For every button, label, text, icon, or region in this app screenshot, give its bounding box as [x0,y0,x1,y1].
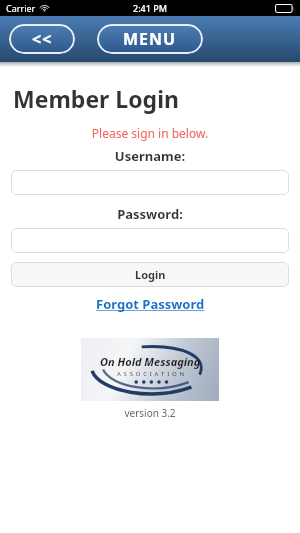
staticText: << [32,28,53,50]
staticText: On Hold Messaging [100,354,201,369]
button[interactable]: Login [11,262,289,287]
staticText: Forgot Password [96,295,205,313]
staticText: version 3.2 [0,406,300,420]
button[interactable] [11,170,289,195]
button[interactable]: MENU [97,24,203,54]
button[interactable]: Forgot Password [96,295,205,313]
staticText: Member Login [13,83,179,114]
staticText: Carrier [6,2,36,14]
staticText: A S S O C I A T I O N [117,370,185,378]
staticText: Login [135,267,166,282]
staticText: Password: [0,205,300,223]
staticText: MENU [123,28,177,50]
staticText: Username: [0,147,300,165]
button[interactable] [11,228,289,253]
button[interactable]: Back [9,24,75,54]
staticText: Please sign in below. [0,125,300,141]
staticText: 2:41 PM [133,2,167,14]
